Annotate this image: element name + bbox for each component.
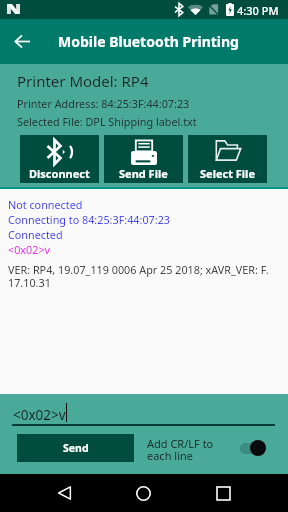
- button[interactable]: Home: [123, 474, 163, 512]
- staticText: Add CR/LF to each line: [147, 436, 214, 463]
- button[interactable]: Select File: [188, 135, 267, 183]
- staticText: VER: RP4, 19.07_119 0006 Apr 25 2018; xA…: [8, 262, 269, 290]
- staticText: Send File: [119, 166, 168, 181]
- button[interactable]: Back: [44, 474, 84, 512]
- button[interactable]: Send File: [104, 135, 183, 183]
- staticText: Printer Model: RP4: [17, 71, 149, 91]
- button[interactable]: Add CR/LF to each line toggle: [238, 437, 270, 459]
- staticText: Printer Address: 84:25:3F:44:07:23: [17, 96, 190, 111]
- staticText: <0x02>v: [13, 406, 66, 424]
- staticText: Connecting to 84:25:3F:44:07:23: [8, 212, 171, 227]
- staticText: Send: [63, 441, 89, 455]
- staticText: Disconnect: [29, 166, 90, 181]
- staticText: Selected File: DPL Shipping label.txt: [17, 114, 197, 129]
- staticText: Mobile Bluetooth Printing: [58, 32, 239, 51]
- staticText: Not connected: [8, 197, 83, 212]
- button[interactable]: Send: [17, 434, 134, 462]
- staticText: Connected: [8, 227, 63, 242]
- staticText: Select File: [200, 166, 255, 181]
- staticText: 4:30 PM: [237, 3, 279, 18]
- staticText: <0x02>v: [8, 242, 51, 257]
- button[interactable]: Back: [0, 19, 45, 64]
- button[interactable]: Disconnect: [20, 135, 99, 183]
- button[interactable]: Recent apps: [203, 474, 243, 512]
